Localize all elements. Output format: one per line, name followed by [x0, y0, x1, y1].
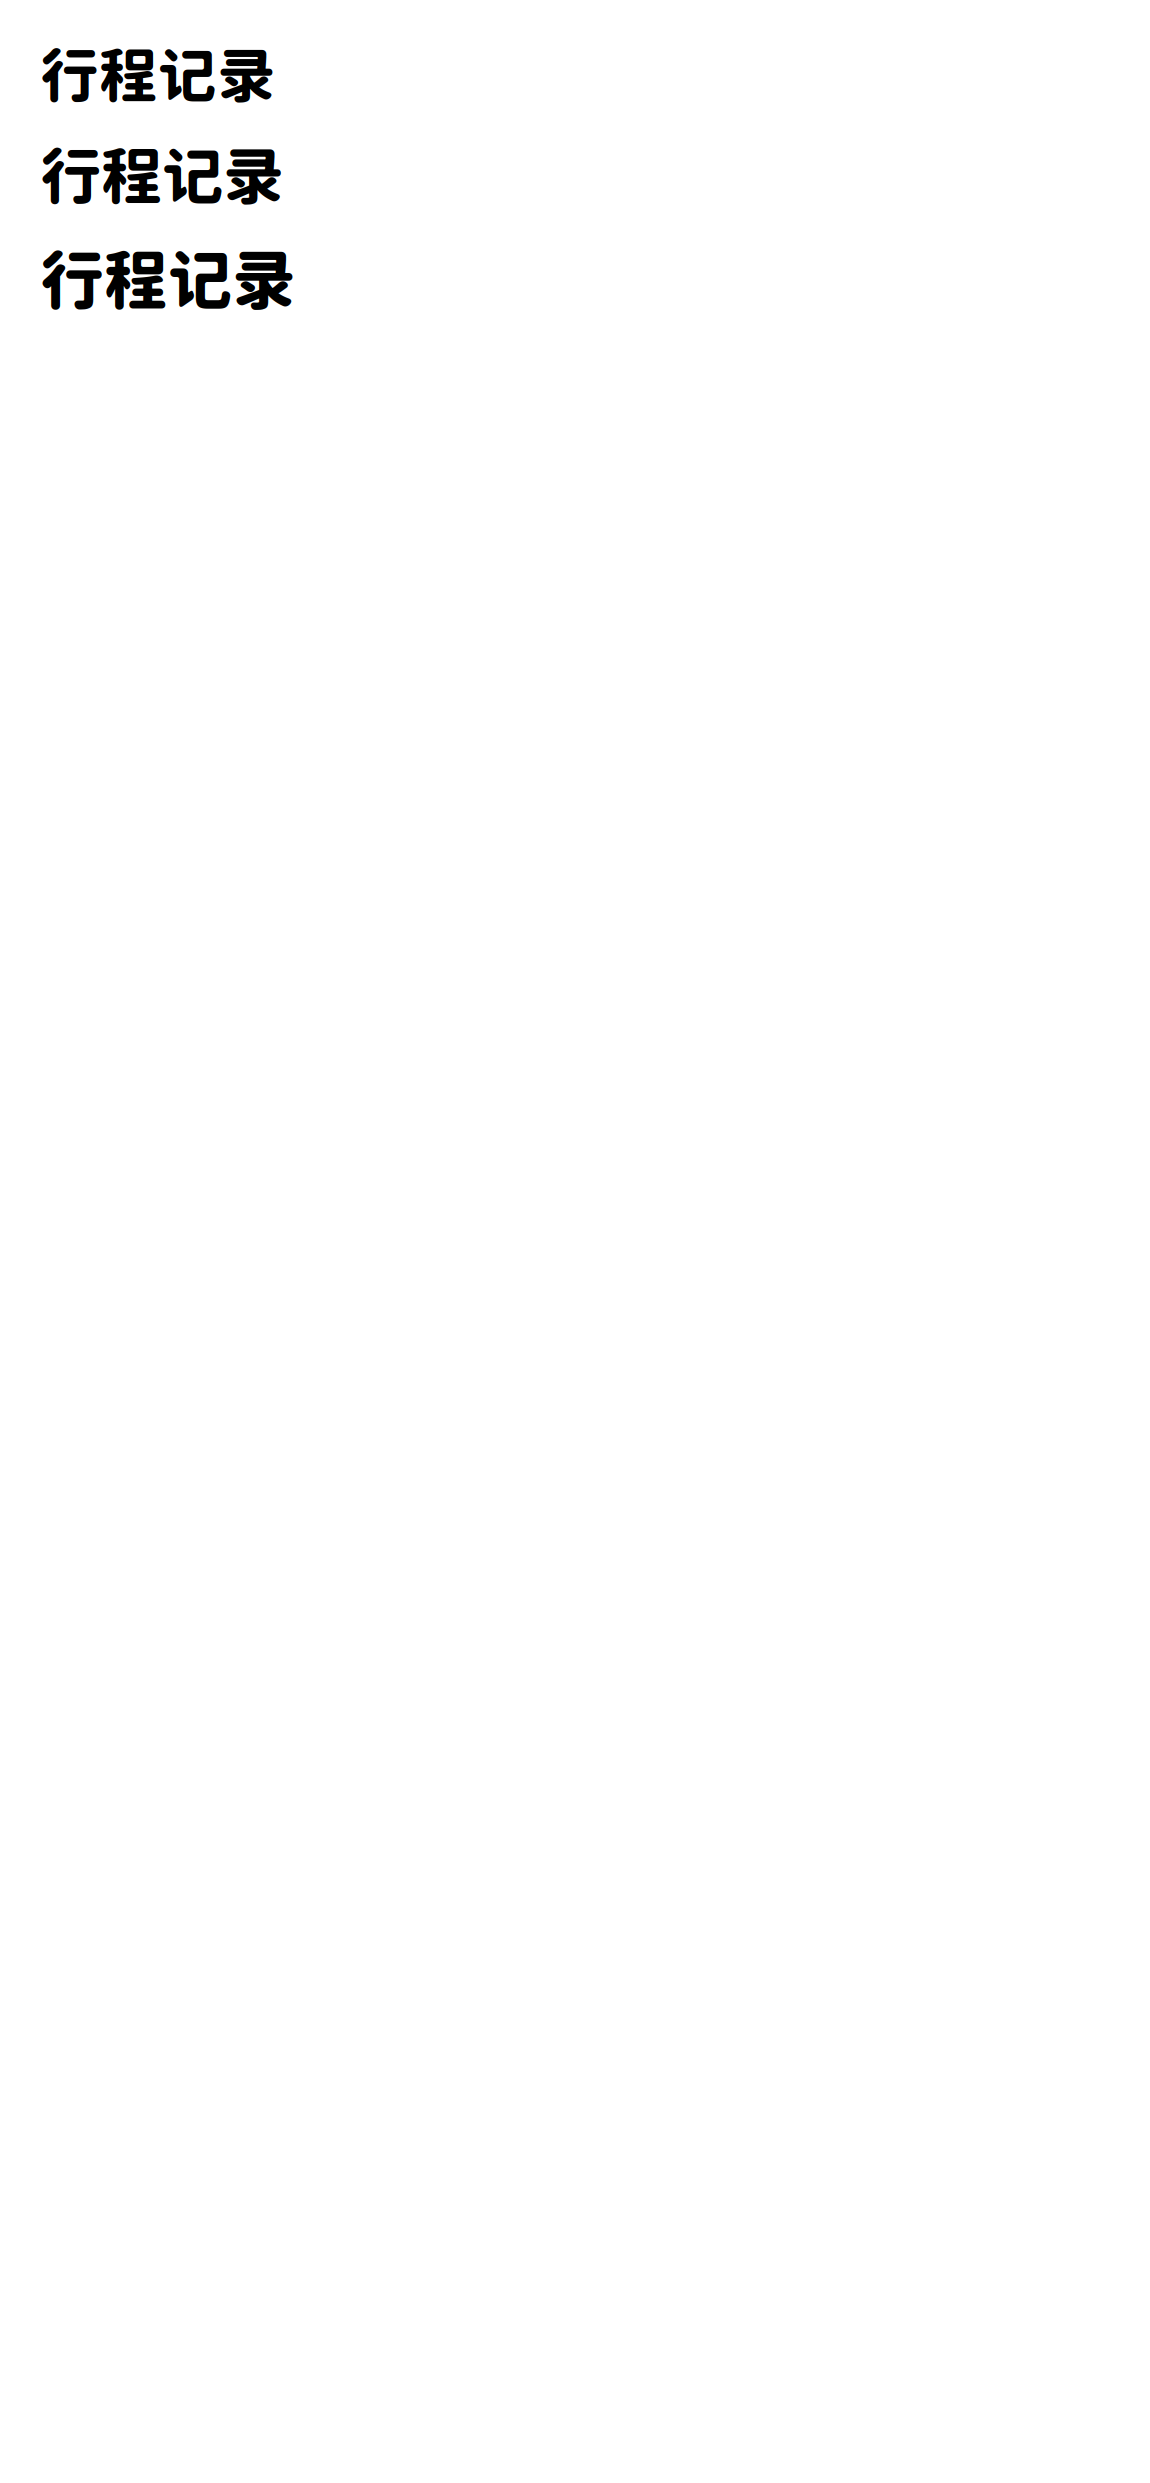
staticText: 行程记录 — [40, 242, 296, 317]
staticText: 行程记录 — [40, 139, 284, 212]
staticText: 行程记录 — [40, 40, 276, 109]
